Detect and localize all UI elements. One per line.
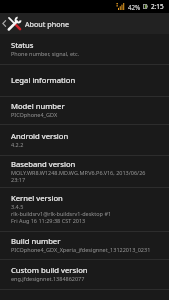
button[interactable]: Baseband version [0, 156, 169, 187]
staticText: Build number [11, 236, 61, 246]
staticText: Baseband version [11, 159, 76, 169]
staticText: Phone number, signal, etc. [11, 50, 80, 57]
button[interactable]: Legal information [0, 65, 169, 96]
button[interactable]: Custom build version [0, 260, 169, 289]
staticText: Kernel version [11, 193, 63, 203]
staticText: 2:15 [151, 2, 164, 11]
staticText: About phone [25, 19, 69, 29]
staticText: Fri Aug 16 11:29:38 CST 2013 [11, 217, 86, 224]
button[interactable]: Status [0, 34, 169, 64]
button[interactable]: Build number [0, 232, 169, 259]
staticText: rlk-buildsrv1@rlk-buildsrv1-desktop #1 [11, 210, 112, 217]
staticText: PICOphone4_GDX [11, 111, 58, 118]
button[interactable]: Navigate up, About phone [0, 13, 93, 34]
staticText: Legal information [11, 75, 76, 85]
staticText: Status [11, 40, 34, 50]
button[interactable]: Android version [0, 125, 169, 155]
staticText: Model number [11, 101, 65, 111]
staticText: Custom build version [11, 265, 88, 275]
staticText: eng.jfdesignnet.1384862077 [11, 275, 85, 282]
staticText: 23:17 [11, 176, 26, 183]
button[interactable]: Kernel version [0, 188, 169, 231]
staticText: 4.2.2 [11, 141, 24, 148]
button[interactable]: Model number [0, 97, 169, 124]
staticText: Android version [11, 131, 69, 141]
staticText: 3.4.5 [11, 203, 24, 210]
staticText: PICOphone4_GDX_Xperia_jfdesignnet_131220… [11, 246, 151, 253]
staticText: 42% [128, 3, 141, 11]
staticText: MOLY.WR8.W1248.MD.WG.MP.V6.P6.V16, 2013/… [11, 169, 146, 176]
